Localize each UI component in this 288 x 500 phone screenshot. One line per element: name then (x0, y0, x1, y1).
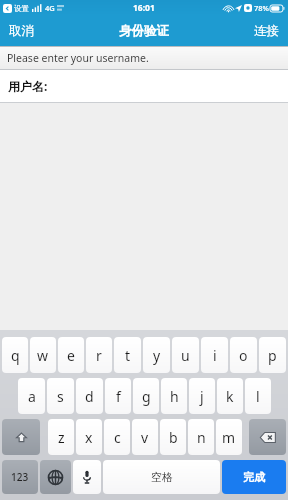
button[interactable]: t (114, 337, 141, 373)
button[interactable]: e (58, 337, 84, 373)
button[interactable]: g (133, 378, 159, 414)
button[interactable]: Numbers (2, 460, 38, 494)
staticText: c (114, 428, 121, 447)
staticText: p (268, 346, 277, 365)
button[interactable]: Switch keyboard (40, 460, 71, 494)
button[interactable]: s (47, 378, 74, 414)
staticText: b (169, 428, 178, 447)
button[interactable]: a (18, 378, 45, 414)
button[interactable]: Backspace (249, 419, 286, 455)
staticText: e (67, 346, 75, 365)
staticText: u (181, 346, 190, 365)
button[interactable]: n (188, 419, 214, 455)
button[interactable]: d (76, 378, 103, 414)
button[interactable]: r (86, 337, 112, 373)
button[interactable]: u (172, 337, 199, 373)
button[interactable]: 空格 (103, 460, 220, 494)
staticText: t (125, 346, 131, 365)
staticText: 取消 (9, 23, 34, 39)
button[interactable]: p (259, 337, 286, 373)
button[interactable]: Shift (2, 419, 40, 455)
button[interactable]: 连接 (245, 16, 288, 46)
staticText: j (200, 387, 204, 406)
staticText: 身份验证 (119, 23, 169, 39)
staticText: 设置 (14, 4, 29, 13)
button[interactable]: y (143, 337, 170, 373)
staticText: 4G (45, 3, 55, 13)
staticText: 78% (254, 3, 269, 13)
staticText: y (153, 346, 161, 365)
staticText: f (116, 387, 121, 406)
staticText: 123 (11, 470, 29, 484)
button[interactable]: f (105, 378, 131, 414)
staticText: l (256, 387, 260, 406)
button[interactable]: i (201, 337, 228, 373)
staticText: d (85, 387, 94, 406)
button[interactable]: k (217, 378, 243, 414)
button[interactable]: v (132, 419, 158, 455)
staticText: 用户名: (8, 78, 48, 94)
staticText: v (141, 428, 149, 447)
button[interactable]: z (48, 419, 74, 455)
button[interactable]: 取消 (0, 16, 43, 46)
staticText: 16:01 (133, 2, 155, 14)
button[interactable]: l (245, 378, 271, 414)
button[interactable]: c (104, 419, 130, 455)
staticText: Please enter your username. (7, 51, 149, 65)
button[interactable]: h (161, 378, 187, 414)
staticText: 完成 (243, 470, 265, 484)
button[interactable]: o (230, 337, 257, 373)
staticText: w (37, 346, 49, 365)
staticText: x (85, 428, 93, 447)
staticText: g (142, 387, 151, 406)
staticText: o (239, 346, 248, 365)
button[interactable]: b (160, 419, 186, 455)
staticText: n (197, 428, 206, 447)
staticText: 连接 (254, 23, 279, 39)
staticText: r (96, 346, 102, 365)
button[interactable]: q (2, 337, 28, 373)
staticText: m (222, 428, 236, 447)
staticText: h (170, 387, 179, 406)
staticText: k (226, 387, 234, 406)
staticText: a (28, 387, 36, 406)
staticText: z (58, 428, 65, 447)
button[interactable]: x (76, 419, 102, 455)
button[interactable]: 用户名: (0, 70, 288, 102)
button[interactable]: Voice input (73, 460, 101, 494)
staticText: i (213, 346, 217, 365)
button[interactable]: m (216, 419, 242, 455)
staticText: q (11, 346, 20, 365)
button[interactable]: w (30, 337, 56, 373)
staticText: s (57, 387, 64, 406)
button[interactable]: j (189, 378, 215, 414)
staticText: 空格 (151, 470, 173, 484)
button[interactable]: 完成 (222, 460, 286, 494)
